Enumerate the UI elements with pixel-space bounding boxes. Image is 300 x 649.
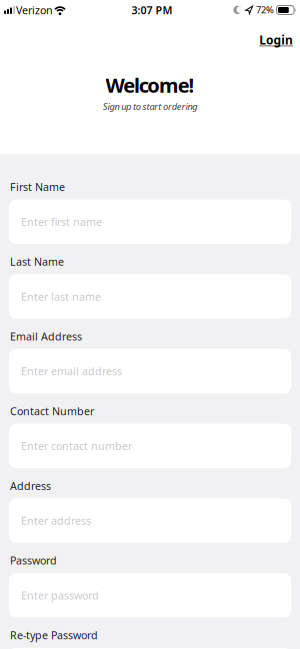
staticText: Enter password [21,588,99,602]
staticText: 3:07 PM [131,3,172,17]
staticText: Enter email address [21,364,122,378]
staticText: Enter last name [21,289,101,304]
button[interactable]: Enter last name [9,274,291,319]
staticText: Last Name [10,255,64,269]
staticText: Enter first name [21,215,102,229]
button[interactable]: Login [259,32,293,48]
staticText: Enter address [21,513,91,528]
button[interactable]: Enter email address [9,349,291,393]
button[interactable]: Enter password [9,573,291,617]
staticText: Verizon [16,3,53,17]
staticText: Sign up to start ordering [103,100,197,113]
staticText: Welcome! [105,72,194,98]
staticText: Address [10,479,51,493]
staticText: Login [259,32,293,48]
staticText: Password [10,553,57,568]
staticText: Contact Number [10,404,94,418]
staticText: Email Address [10,329,82,343]
staticText: 72% [256,3,274,16]
staticText: Enter contact number [21,439,132,453]
staticText: First Name [10,180,65,194]
button[interactable]: Enter address [9,498,291,543]
button[interactable]: Enter first name [9,200,291,244]
button[interactable]: Enter contact number [9,424,291,468]
staticText: Re-type Password [10,628,98,642]
